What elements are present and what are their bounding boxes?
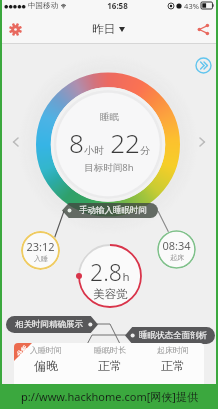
staticText: 分析 [15,344,29,358]
button[interactable]: Previous day [6,132,26,152]
staticText: 正常 [161,358,185,373]
staticText: 相关时间精确展示 [15,319,83,330]
button[interactable]: Settings [0,14,30,44]
staticText: 睡眠状态全面剖析 [139,330,207,341]
staticText: 入睡 [34,254,48,263]
staticText: 8 [69,125,84,160]
staticText: 偏晚 [34,358,58,373]
button[interactable]: Share [188,14,218,44]
staticText: 睡眠 [100,111,119,123]
button[interactable]: 手动输入睡眠时间 [62,203,158,218]
button[interactable]: 2.8 [79,256,141,301]
staticText: p://www.hackhome.com[网侠]提供 [21,389,198,404]
staticText: 23:12 [26,239,55,254]
button[interactable]: 分析 [14,343,204,391]
staticText: 16:58 [107,0,128,11]
button[interactable]: 23:12 [21,231,60,270]
staticText: 22 [110,125,140,160]
staticText: 入睡时间 [30,345,62,355]
staticText: 睡眠时长 [94,345,126,355]
staticText: 小时 [84,144,104,157]
staticText: h [122,269,130,285]
button[interactable]: Expand [194,56,212,74]
staticText: 2.8 [90,256,122,287]
staticText: 43% [184,1,199,11]
staticText: 08:34 [162,238,191,253]
button[interactable]: 相关时间精确展示 [6,316,98,333]
button[interactable]: 昨日 [84,17,133,41]
staticText: 手动输入睡眠时间 [79,205,147,216]
staticText: 分 [140,144,150,157]
button[interactable]: Next day [192,132,212,152]
staticText: 起床时间 [157,345,189,355]
staticText: 正常 [98,358,122,373]
staticText: 目标时间8h [84,161,134,174]
staticText: ●●●●● [4,3,26,9]
staticText: 美容觉 [93,287,128,301]
staticText: 起床 [170,253,184,262]
button[interactable]: 睡眠状态全面剖析 [125,327,215,344]
button[interactable]: 08:34 [157,230,196,269]
staticText: 昨日 [92,22,115,36]
staticText: 中国移动 [28,1,58,10]
